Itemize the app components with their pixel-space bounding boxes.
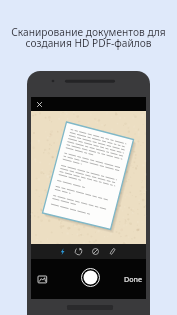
button[interactable]: Close [34, 99, 45, 110]
button[interactable]: Auto crop off [90, 246, 101, 257]
button[interactable]: Capture [81, 268, 100, 287]
button[interactable]: Gallery [35, 273, 50, 288]
staticText: Done [124, 274, 143, 284]
button[interactable]: Flash [57, 246, 68, 257]
button[interactable]: Rotate [73, 246, 84, 257]
button[interactable]: Done [121, 272, 145, 286]
button[interactable]: Filter [107, 246, 118, 257]
staticText: Сканирование документов для создания HD … [0, 25, 177, 50]
